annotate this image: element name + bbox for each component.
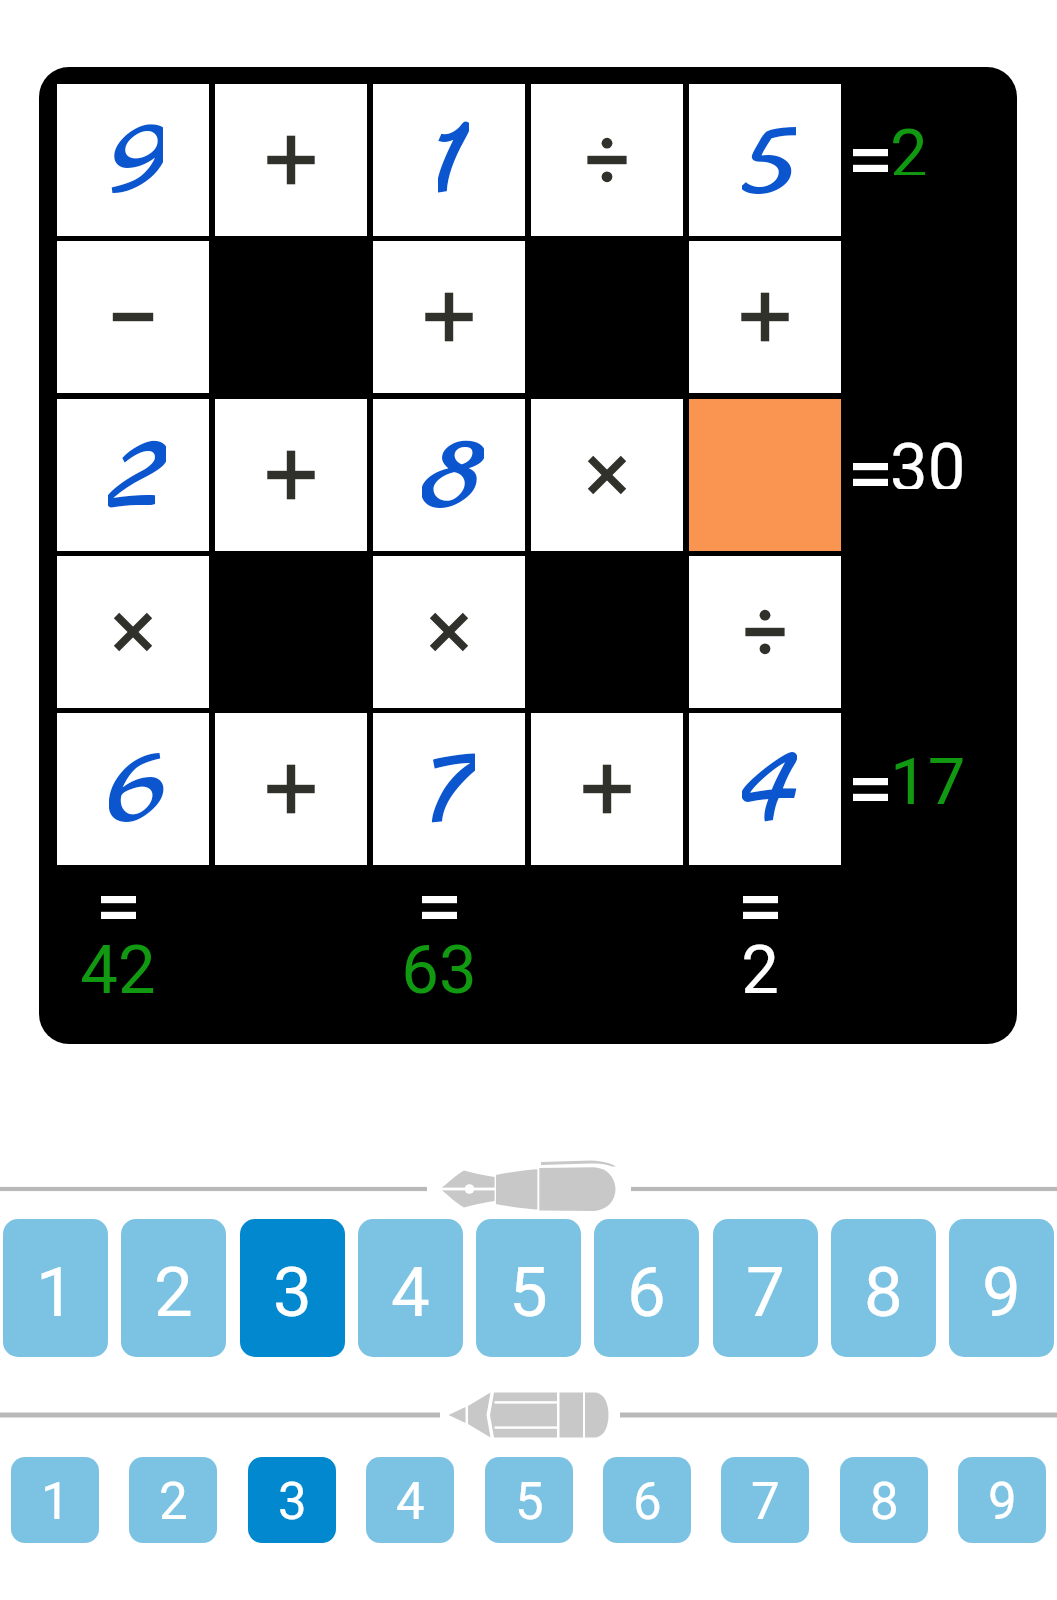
button[interactable] [215, 84, 367, 236]
button[interactable] [531, 84, 683, 236]
staticText: 4 [396, 1472, 425, 1532]
staticText: 7 [431, 702, 475, 854]
staticText: 1 [438, 73, 469, 225]
button[interactable]: 8 [840, 1457, 928, 1543]
button[interactable]: 2 [129, 1457, 217, 1543]
button[interactable]: 63 [379, 896, 499, 1010]
button[interactable]: Pencil mode [0, 1375, 1057, 1455]
button[interactable]: 5 [476, 1219, 581, 1357]
button[interactable]: 4 [689, 713, 841, 865]
staticText: 2 [159, 1472, 188, 1532]
button[interactable]: 7 [721, 1457, 809, 1543]
staticText: 3 [273, 1252, 312, 1333]
staticText: 2 [154, 1252, 193, 1333]
staticText: 2 [108, 388, 166, 540]
staticText: 42 [80, 931, 156, 1010]
staticText: 9 [111, 73, 163, 225]
button[interactable] [215, 399, 367, 551]
staticText: 4 [391, 1252, 430, 1333]
staticText: 17 [890, 744, 966, 804]
staticText: 2 [890, 115, 928, 175]
staticText: 4 [742, 702, 797, 854]
staticText: 3 [278, 1472, 307, 1532]
button[interactable]: 2 [700, 896, 820, 1010]
staticText: 8 [864, 1252, 903, 1333]
button[interactable] [373, 241, 525, 393]
staticText: 1 [36, 1252, 75, 1333]
staticText: 63 [401, 931, 477, 1010]
staticText: 9 [982, 1252, 1021, 1333]
staticText: 5 [515, 1472, 544, 1532]
staticText: 9 [988, 1472, 1017, 1532]
staticText: 6 [109, 702, 166, 854]
button[interactable]: 8 [831, 1219, 936, 1357]
button[interactable]: 1 [373, 84, 525, 236]
button[interactable]: 4 [366, 1457, 454, 1543]
button[interactable] [689, 556, 841, 708]
button[interactable]: 2 [121, 1219, 226, 1357]
button[interactable]: 1 [3, 1219, 108, 1357]
button[interactable]: 2 [57, 399, 209, 551]
button[interactable]: 9 [958, 1457, 1046, 1543]
button[interactable]: 6 [603, 1457, 691, 1543]
staticText: 5 [509, 1252, 548, 1333]
button[interactable]: 3 [248, 1457, 336, 1543]
button[interactable] [531, 713, 683, 865]
staticText: 8 [422, 388, 484, 540]
staticText: 30 [890, 429, 966, 489]
button[interactable]: 1 [11, 1457, 99, 1543]
button[interactable]: 30 [853, 444, 966, 504]
button[interactable] [531, 399, 683, 551]
button[interactable]: 42 [58, 896, 178, 1010]
button[interactable]: 9 [57, 84, 209, 236]
staticText: 6 [633, 1472, 662, 1532]
button[interactable] [57, 241, 209, 393]
button[interactable]: 6 [594, 1219, 699, 1357]
button[interactable]: 6 [57, 713, 209, 865]
button[interactable] [57, 556, 209, 708]
button[interactable]: 3 [240, 1219, 345, 1357]
button[interactable]: 8 [373, 399, 525, 551]
staticText: 7 [751, 1472, 780, 1532]
button[interactable] [689, 241, 841, 393]
staticText: 8 [870, 1472, 899, 1532]
button[interactable]: 5 [689, 84, 841, 236]
staticText: 2 [741, 931, 779, 1010]
button[interactable] [373, 556, 525, 708]
staticText: 1 [41, 1472, 70, 1532]
button[interactable]: 7 [713, 1219, 818, 1357]
button[interactable]: 9 [949, 1219, 1054, 1357]
button[interactable]: 4 [358, 1219, 463, 1357]
staticText: 6 [627, 1252, 666, 1333]
button[interactable]: Pen mode [0, 1149, 1057, 1229]
button[interactable]: 17 [853, 759, 966, 819]
staticText: 5 [742, 73, 796, 225]
button[interactable]: 2 [853, 130, 928, 190]
button[interactable] [215, 713, 367, 865]
button[interactable]: 7 [373, 713, 525, 865]
staticText: 7 [746, 1252, 785, 1333]
button[interactable]: 5 [485, 1457, 573, 1543]
